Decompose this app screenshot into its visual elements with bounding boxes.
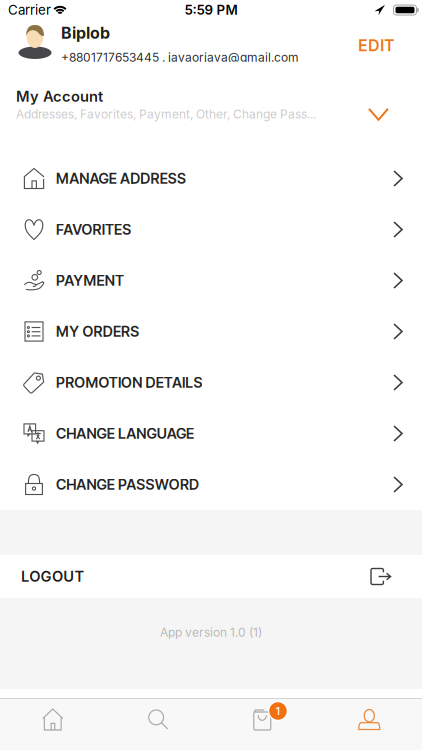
staticText: +8801717653445 . javaorjava@gmail.com (61, 50, 299, 65)
staticText: 1 (275, 705, 280, 717)
button[interactable]: PAYMENT (0, 255, 422, 306)
button[interactable]: CHANGE PASSWORD (0, 459, 422, 510)
button[interactable]: LOGOUT (0, 555, 422, 598)
button[interactable]: Profile (316, 699, 422, 750)
staticText: CHANGE PASSWORD (56, 476, 199, 493)
staticText: 5:59 PM (184, 2, 237, 18)
staticText: Addresses, Favorites, Payment, Other, Ch… (16, 107, 316, 121)
button[interactable]: Cart (211, 699, 316, 750)
staticText: FAVORITES (56, 221, 131, 238)
staticText: LOGOUT (21, 568, 84, 585)
button[interactable]: EDIT (358, 25, 422, 55)
staticText: My Account (16, 88, 103, 105)
staticText: CHANGE LANGUAGE (56, 425, 194, 442)
button[interactable]: My Account (0, 62, 422, 121)
button[interactable]: CHANGE LANGUAGE (0, 408, 422, 459)
staticText: Carrier (8, 2, 51, 18)
button[interactable]: PROMOTION DETAILS (0, 357, 422, 408)
staticText: EDIT (358, 36, 395, 55)
staticText: Biplob (61, 23, 110, 42)
button[interactable]: MY ORDERS (0, 306, 422, 357)
staticText: App version 1.0 (1) (160, 625, 262, 640)
staticText: MANAGE ADDRESS (56, 170, 186, 187)
staticText: PROMOTION DETAILS (56, 374, 202, 391)
staticText: PAYMENT (56, 272, 124, 289)
button[interactable]: FAVORITES (0, 204, 422, 255)
staticText: MY ORDERS (56, 323, 139, 340)
button[interactable]: Search (105, 699, 211, 750)
button[interactable]: Home (0, 699, 105, 750)
button[interactable]: MANAGE ADDRESS (0, 153, 422, 204)
